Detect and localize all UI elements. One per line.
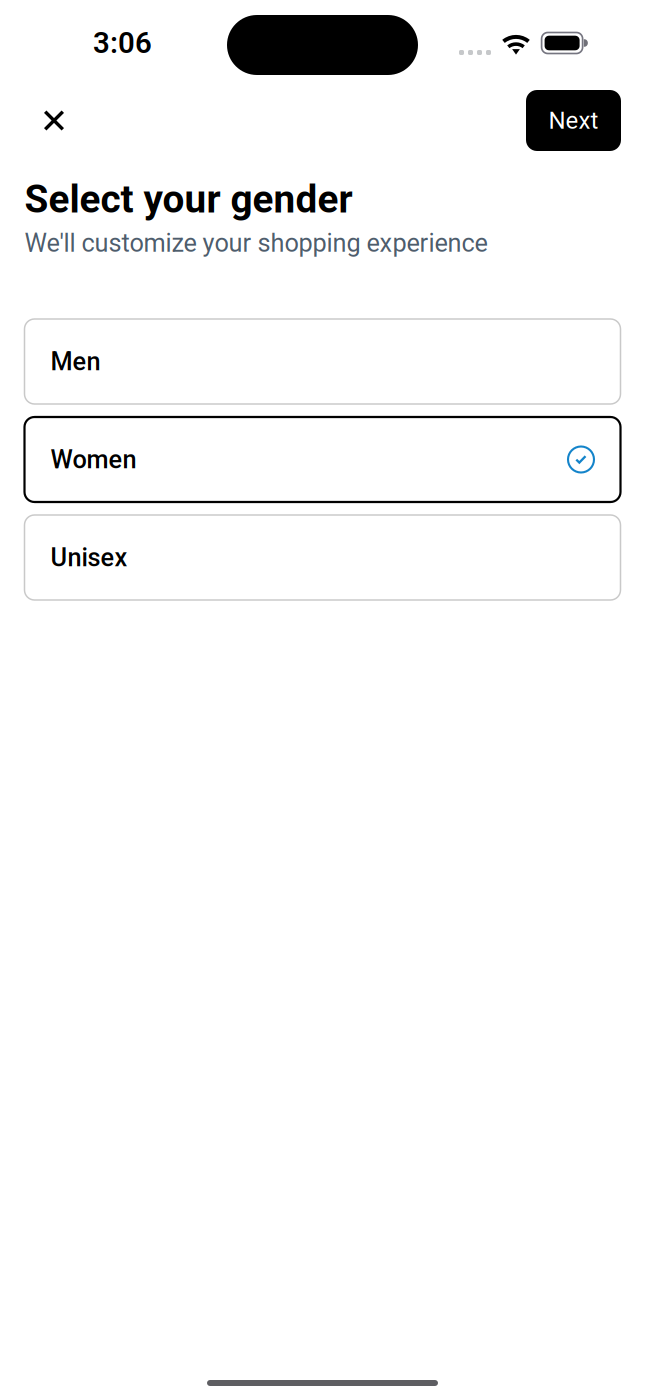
staticText: Women <box>50 445 136 474</box>
button[interactable]: Next <box>526 90 621 151</box>
staticText: 3:06 <box>93 26 152 60</box>
staticText: We'll customize your shopping experience <box>24 228 487 258</box>
staticText: Men <box>50 347 100 376</box>
staticText: Select your gender <box>24 177 352 222</box>
button[interactable]: Close <box>30 96 78 144</box>
staticText: Unisex <box>50 543 127 572</box>
button[interactable]: Men <box>24 319 620 404</box>
button[interactable]: Women <box>24 417 620 502</box>
staticText: Next <box>548 106 598 134</box>
button[interactable]: Unisex <box>24 515 620 600</box>
